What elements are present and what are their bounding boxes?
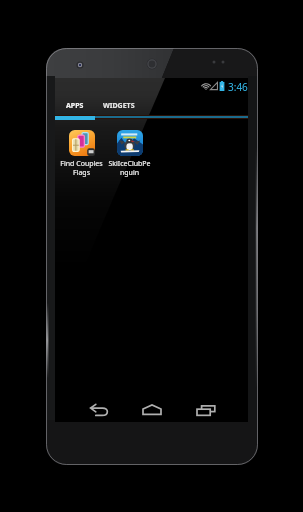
staticText: SkiIceClubPe nguin [100, 159, 159, 177]
button[interactable]: Home [134, 398, 170, 422]
staticText: 3:46 [228, 80, 248, 94]
button[interactable]: SkiIceClubPe nguin [100, 130, 159, 174]
staticText: WIDGETS [103, 101, 135, 111]
button[interactable]: Find Couples Flags [52, 130, 111, 174]
button[interactable]: APPS [55, 95, 95, 117]
button[interactable]: Back [80, 398, 116, 422]
button[interactable]: WIDGETS [91, 95, 146, 117]
staticText: Find Couples Flags [52, 159, 111, 177]
staticText: APPS [66, 101, 84, 111]
button[interactable]: Recent apps [188, 398, 224, 422]
